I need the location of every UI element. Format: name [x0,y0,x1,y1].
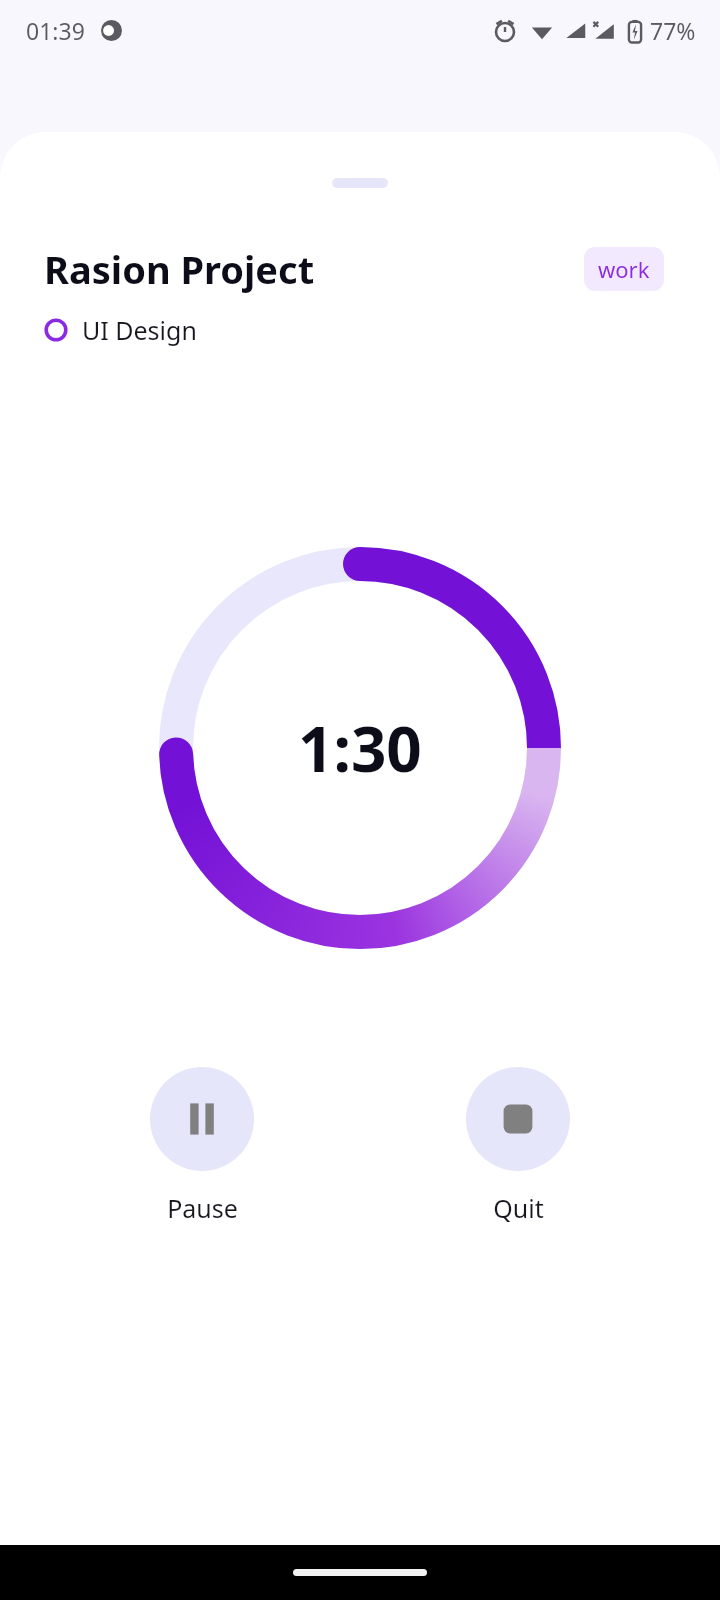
button[interactable]: Quit [466,1067,570,1171]
staticText: Rasion Project [44,243,584,295]
button[interactable]: Pause [150,1067,254,1171]
staticText: Pause [167,1191,238,1225]
button[interactable]: work [584,247,664,291]
staticText: 77% [650,15,696,46]
staticText: work [598,254,650,284]
staticText: 1:30 [298,706,422,790]
staticText: 01:39 [26,15,85,46]
staticText: Quit [493,1191,544,1225]
staticText: UI Design [82,313,197,347]
